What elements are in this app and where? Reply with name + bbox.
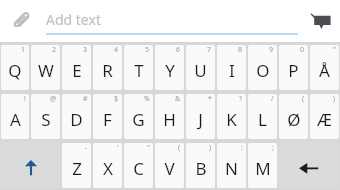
button[interactable]: 0 (279, 45, 308, 90)
button[interactable]: Shift (1, 143, 60, 188)
button[interactable]: 9 (248, 45, 277, 90)
button[interactable]: ! (1, 94, 29, 139)
staticText: Ø (287, 108, 301, 131)
staticText: V (164, 157, 175, 180)
staticText: S (41, 108, 51, 131)
button[interactable]: ( (279, 94, 308, 139)
staticText: U (194, 59, 207, 82)
button[interactable]: 3 (62, 45, 91, 90)
button[interactable]: & (155, 94, 184, 139)
button[interactable]: Comment (304, 4, 338, 38)
button[interactable]: @ (31, 94, 60, 139)
button[interactable]: " (310, 45, 339, 90)
staticText: ) (333, 94, 336, 104)
staticText: 2 (52, 45, 57, 55)
staticText: D (70, 108, 83, 131)
button[interactable]: 8 (217, 45, 246, 90)
button[interactable]: 7 (186, 45, 215, 90)
button[interactable]: 4 (93, 45, 122, 90)
button[interactable]: ( (155, 143, 184, 188)
staticText: W (38, 59, 54, 82)
button[interactable]: " (124, 143, 153, 188)
button[interactable]: 2 (31, 45, 60, 90)
staticText: ' (117, 143, 119, 153)
staticText: Z (72, 157, 82, 180)
staticText: C (133, 157, 144, 180)
staticText: ( (178, 143, 181, 153)
staticText: ( (302, 94, 305, 104)
staticText: J (198, 108, 203, 131)
staticText: T (134, 59, 144, 82)
staticText: & (175, 94, 181, 104)
staticText: 1 (21, 45, 26, 55)
button[interactable]: - (62, 143, 91, 188)
staticText: " (333, 45, 336, 55)
staticText: M (255, 157, 271, 180)
staticText: % (144, 94, 150, 104)
staticText: R (102, 59, 113, 82)
staticText: A (10, 108, 21, 131)
staticText: Æ (317, 108, 332, 131)
button[interactable]: Backspace (279, 143, 339, 188)
staticText: " (147, 143, 150, 153)
staticText: X (103, 157, 113, 180)
button[interactable]: Attach file (4, 4, 38, 38)
staticText: # (83, 94, 88, 104)
staticText: / (271, 94, 274, 104)
staticText: I (229, 59, 235, 82)
button[interactable]: Add text (46, 8, 298, 29)
staticText: 6 (176, 45, 181, 55)
button[interactable]: 1 (1, 45, 29, 90)
button[interactable]: $ (93, 94, 122, 139)
staticText: F (103, 108, 112, 131)
button[interactable]: 5 (124, 45, 153, 90)
button[interactable]: # (62, 94, 91, 139)
staticText: * (208, 94, 212, 104)
staticText: 3 (83, 45, 88, 55)
button[interactable]: ' (93, 143, 122, 188)
button[interactable]: ? (217, 94, 246, 139)
staticText: ? (239, 94, 243, 104)
staticText: O (256, 59, 270, 82)
staticText: ! (24, 94, 26, 104)
button[interactable]: ) (186, 143, 215, 188)
button[interactable]: % (124, 94, 153, 139)
staticText: E (72, 59, 82, 82)
staticText: 9 (269, 45, 274, 55)
button[interactable]: : (217, 143, 246, 188)
staticText: H (163, 108, 176, 131)
staticText: @ (50, 94, 57, 104)
staticText: P (288, 59, 299, 82)
staticText: N (225, 157, 238, 180)
staticText: 0 (300, 45, 305, 55)
button[interactable]: ) (310, 94, 339, 139)
staticText: B (195, 157, 207, 180)
staticText: 5 (145, 45, 150, 55)
staticText: Add text (46, 10, 101, 29)
staticText: - (85, 143, 88, 153)
staticText: ) (209, 143, 212, 153)
staticText: G (132, 108, 145, 131)
staticText: ; (272, 143, 274, 153)
button[interactable]: / (248, 94, 277, 139)
button[interactable]: 6 (155, 45, 184, 90)
staticText: Y (165, 59, 175, 82)
button[interactable]: * (186, 94, 215, 139)
staticText: $ (114, 94, 119, 104)
staticText: K (226, 108, 237, 131)
staticText: Å (319, 59, 330, 82)
button[interactable]: ; (248, 143, 277, 188)
staticText: L (258, 108, 267, 131)
staticText: 7 (207, 45, 212, 55)
staticText: 4 (114, 45, 119, 55)
staticText: Q (8, 59, 22, 82)
staticText: 8 (238, 45, 243, 55)
staticText: : (241, 143, 243, 153)
